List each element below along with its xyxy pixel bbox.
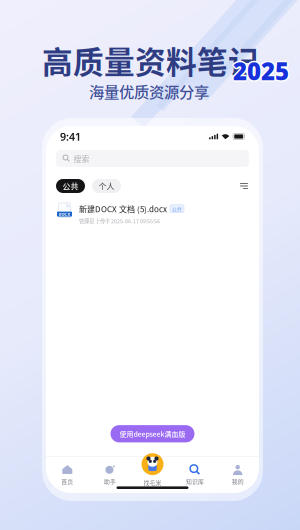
button[interactable]: 助手 — [89, 457, 131, 485]
staticText: 海量优质资源分享 — [89, 80, 209, 102]
button[interactable]: 找乇米 — [131, 457, 174, 485]
staticText: 我的 — [232, 477, 244, 485]
button[interactable]: Sort — [239, 181, 249, 191]
staticText: 新建DOCX 文档 (5).docx — [79, 203, 167, 215]
staticText: 首页 — [61, 477, 73, 485]
staticText: 高质量资料笔记 — [42, 38, 259, 82]
staticText: 2025 — [231, 55, 287, 87]
staticText: 2025 — [234, 55, 290, 87]
staticText: DOCX — [58, 211, 70, 217]
staticText: 公共 — [62, 180, 78, 192]
button[interactable]: 使用deepseek满血版 — [110, 425, 194, 442]
staticText: 2025 — [234, 56, 290, 88]
staticText: 9:41 — [60, 129, 81, 144]
staticText: 2025 — [233, 56, 289, 88]
staticText: 2025 — [234, 54, 290, 86]
staticText: 助手 — [104, 477, 116, 485]
staticText: 管理员 上传于 2025-06-17 09:55:56 — [79, 217, 160, 225]
staticText: 2025 — [233, 55, 289, 87]
button[interactable]: 公共 — [56, 179, 85, 193]
staticText: 使用deepseek满血版 — [119, 429, 185, 439]
staticText: 个人 — [98, 180, 114, 192]
staticText: 2025 — [233, 53, 289, 85]
staticText: 搜索 — [73, 153, 89, 164]
staticText: 2025 — [232, 56, 288, 88]
button[interactable]: 搜索 — [46, 150, 259, 167]
button[interactable]: 知识库 — [174, 457, 216, 485]
button[interactable]: 我的 — [216, 457, 259, 485]
staticText: 公开 — [172, 205, 182, 212]
button[interactable]: 个人 — [92, 179, 121, 193]
staticText: 知识库 — [186, 477, 204, 485]
button[interactable]: 首页 — [46, 457, 89, 485]
button[interactable]: DOCX — [46, 193, 259, 225]
staticText: 2025 — [232, 54, 288, 86]
staticText: 找乇米 — [143, 478, 161, 487]
